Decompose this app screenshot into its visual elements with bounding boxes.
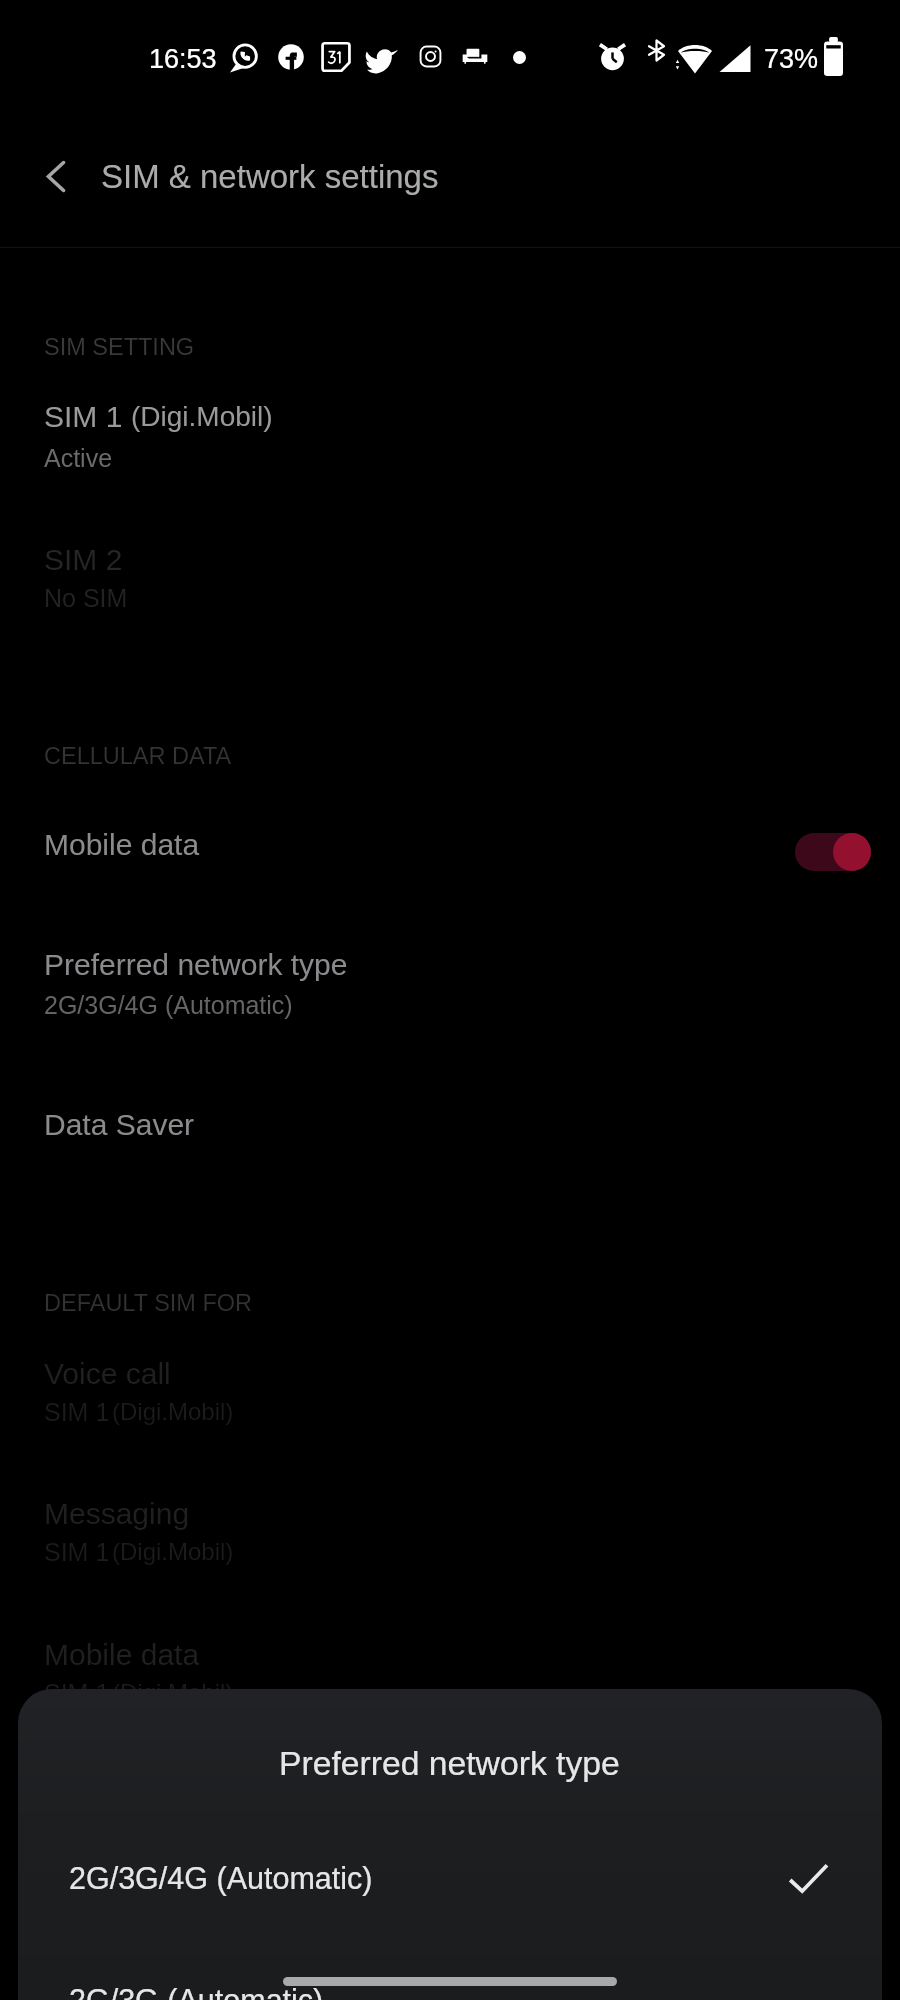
staticText: Preferred network type [279, 1744, 620, 1782]
staticText: Mobile data [44, 1638, 200, 1672]
staticText: 2G/3G (Automatic) [69, 1983, 324, 2000]
staticText: Messaging [44, 1497, 190, 1531]
button[interactable]: Voice call [0, 1342, 900, 1452]
button[interactable]: Preferred network type [0, 932, 900, 1042]
button[interactable]: SIM 2 [0, 528, 900, 638]
button[interactable]: Back [21, 141, 91, 211]
staticText: SIM 1 [44, 1538, 110, 1566]
button[interactable]: SIM & network settings [101, 131, 501, 223]
staticText: 73% [764, 44, 819, 74]
button[interactable]: 2G/3G (Automatic) [18, 1957, 882, 2000]
staticText: SIM 1 [44, 400, 123, 434]
staticText: DEFAULT SIM FOR [44, 1290, 253, 1316]
button[interactable]: Messaging [0, 1482, 900, 1592]
button[interactable]: Data Saver [0, 1080, 900, 1170]
staticText: Data Saver [44, 1108, 195, 1142]
staticText: (Digi.Mobil) [112, 1538, 234, 1565]
button[interactable]: Mobile data [0, 800, 900, 910]
button[interactable]: SIM 1 [0, 385, 900, 495]
staticText: SIM SETTING [44, 334, 195, 360]
button[interactable]: 2G/3G/4G (Automatic) [18, 1835, 882, 1927]
staticText: SIM 2 [44, 543, 123, 577]
staticText: Active [44, 444, 113, 472]
staticText: (Digi.Mobil) [112, 1679, 234, 1706]
button[interactable]: Mobile data [0, 1623, 900, 1733]
button[interactable]: Mobile data switch [795, 833, 871, 871]
staticText: (Digi.Mobil) [112, 1398, 234, 1425]
staticText: SIM 1 [44, 1679, 110, 1707]
staticText: Preferred network type [44, 948, 348, 982]
staticText: Voice call [44, 1357, 171, 1391]
button: Preferred network type [18, 1689, 882, 1817]
staticText: 16:53 [149, 44, 217, 74]
staticText: 2G/3G/4G (Automatic) [44, 991, 293, 1019]
staticText: (Digi.Mobil) [131, 401, 273, 432]
staticText: Mobile data [44, 828, 200, 862]
staticText: No SIM [44, 584, 128, 612]
staticText: 2G/3G/4G (Automatic) [69, 1861, 373, 1895]
staticText: CELLULAR DATA [44, 743, 232, 769]
staticText: SIM & network settings [101, 158, 439, 195]
staticText: SIM 1 [44, 1398, 110, 1426]
